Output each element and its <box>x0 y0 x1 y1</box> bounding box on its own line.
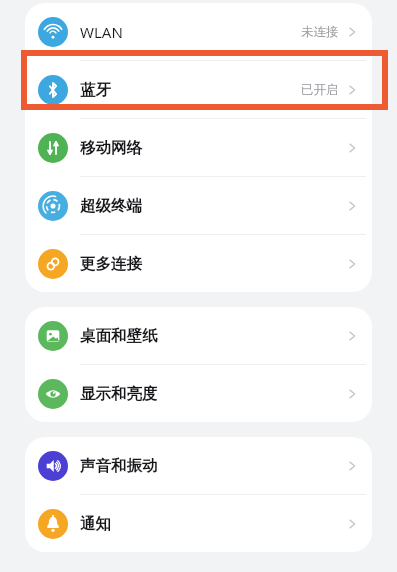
staticText: 显示和亮度 <box>80 384 158 404</box>
staticText: 已开启 <box>301 82 339 98</box>
button[interactable]: 蓝牙 <box>25 61 372 118</box>
staticText: 声音和振动 <box>80 456 158 476</box>
button[interactable]: 超级终端 <box>25 177 372 234</box>
staticText: 未连接 <box>301 24 339 40</box>
button[interactable]: 声音和振动 <box>25 437 372 494</box>
button[interactable]: 更多连接 <box>25 235 372 292</box>
staticText: 超级终端 <box>80 196 142 216</box>
button[interactable]: 显示和亮度 <box>25 365 372 422</box>
button[interactable]: 桌面和壁纸 <box>25 307 372 364</box>
staticText: 更多连接 <box>80 254 142 274</box>
staticText: 通知 <box>80 514 111 534</box>
staticText: WLAN <box>80 22 123 42</box>
staticText: 桌面和壁纸 <box>80 326 158 346</box>
staticText: 移动网络 <box>80 138 142 158</box>
staticText: 蓝牙 <box>80 80 111 100</box>
button[interactable]: 移动网络 <box>25 119 372 176</box>
button[interactable]: WLAN <box>25 3 372 60</box>
button[interactable]: 通知 <box>25 495 372 552</box>
